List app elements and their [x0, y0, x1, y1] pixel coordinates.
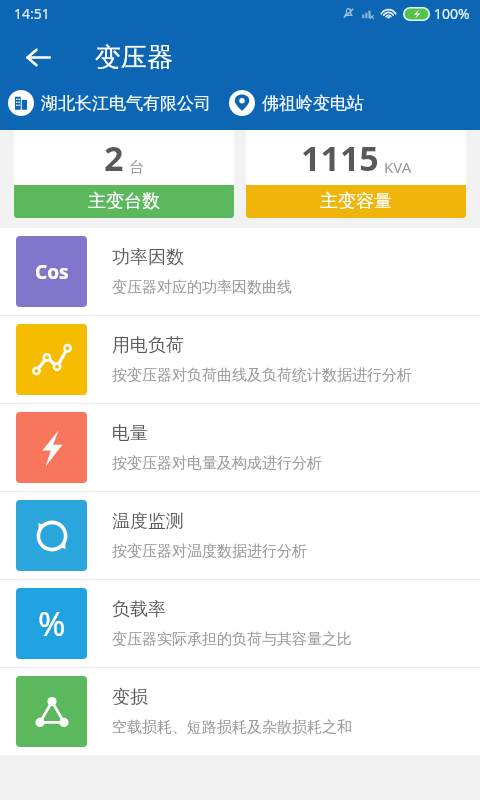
button[interactable]: 2: [14, 130, 234, 218]
button[interactable]: 1115: [246, 130, 466, 218]
staticText: %: [38, 601, 66, 646]
staticText: 按变压器对温度数据进行分析: [112, 542, 307, 561]
staticText: 空载损耗、短路损耗及杂散损耗之和: [112, 718, 352, 737]
button[interactable]: Cos: [0, 228, 480, 316]
staticText: 变压器: [95, 41, 173, 74]
staticText: 佛祖岭变电站: [262, 93, 364, 114]
staticText: 功率因数: [112, 246, 184, 269]
button[interactable]: Back: [14, 33, 62, 81]
staticText: 1115: [301, 135, 379, 181]
staticText: 负载率: [112, 598, 166, 621]
staticText: 温度监测: [112, 510, 184, 533]
button[interactable]: %: [0, 580, 480, 668]
staticText: 2: [104, 135, 124, 181]
staticText: 变压器实际承担的负荷与其容量之比: [112, 630, 352, 649]
staticText: KVA: [384, 157, 412, 177]
staticText: 电量: [112, 422, 148, 445]
staticText: 用电负荷: [112, 334, 184, 357]
staticText: 湖北长江电气有限公司: [41, 93, 211, 114]
button[interactable]: 电量: [0, 404, 480, 492]
button[interactable]: 变损: [0, 668, 480, 755]
staticText: 主变台数: [88, 190, 160, 213]
staticText: 100%: [434, 4, 470, 23]
staticText: 按变压器对电量及构成进行分析: [112, 454, 322, 473]
button[interactable]: 用电负荷: [0, 316, 480, 404]
button[interactable]: 温度监测: [0, 492, 480, 580]
staticText: 变损: [112, 686, 148, 709]
staticText: 主变容量: [320, 190, 392, 213]
staticText: 14:51: [14, 4, 50, 23]
staticText: Cos: [35, 259, 69, 285]
staticText: 变压器对应的功率因数曲线: [112, 278, 292, 297]
staticText: 台: [129, 158, 144, 177]
staticText: 按变压器对负荷曲线及负荷统计数据进行分析: [112, 366, 412, 385]
